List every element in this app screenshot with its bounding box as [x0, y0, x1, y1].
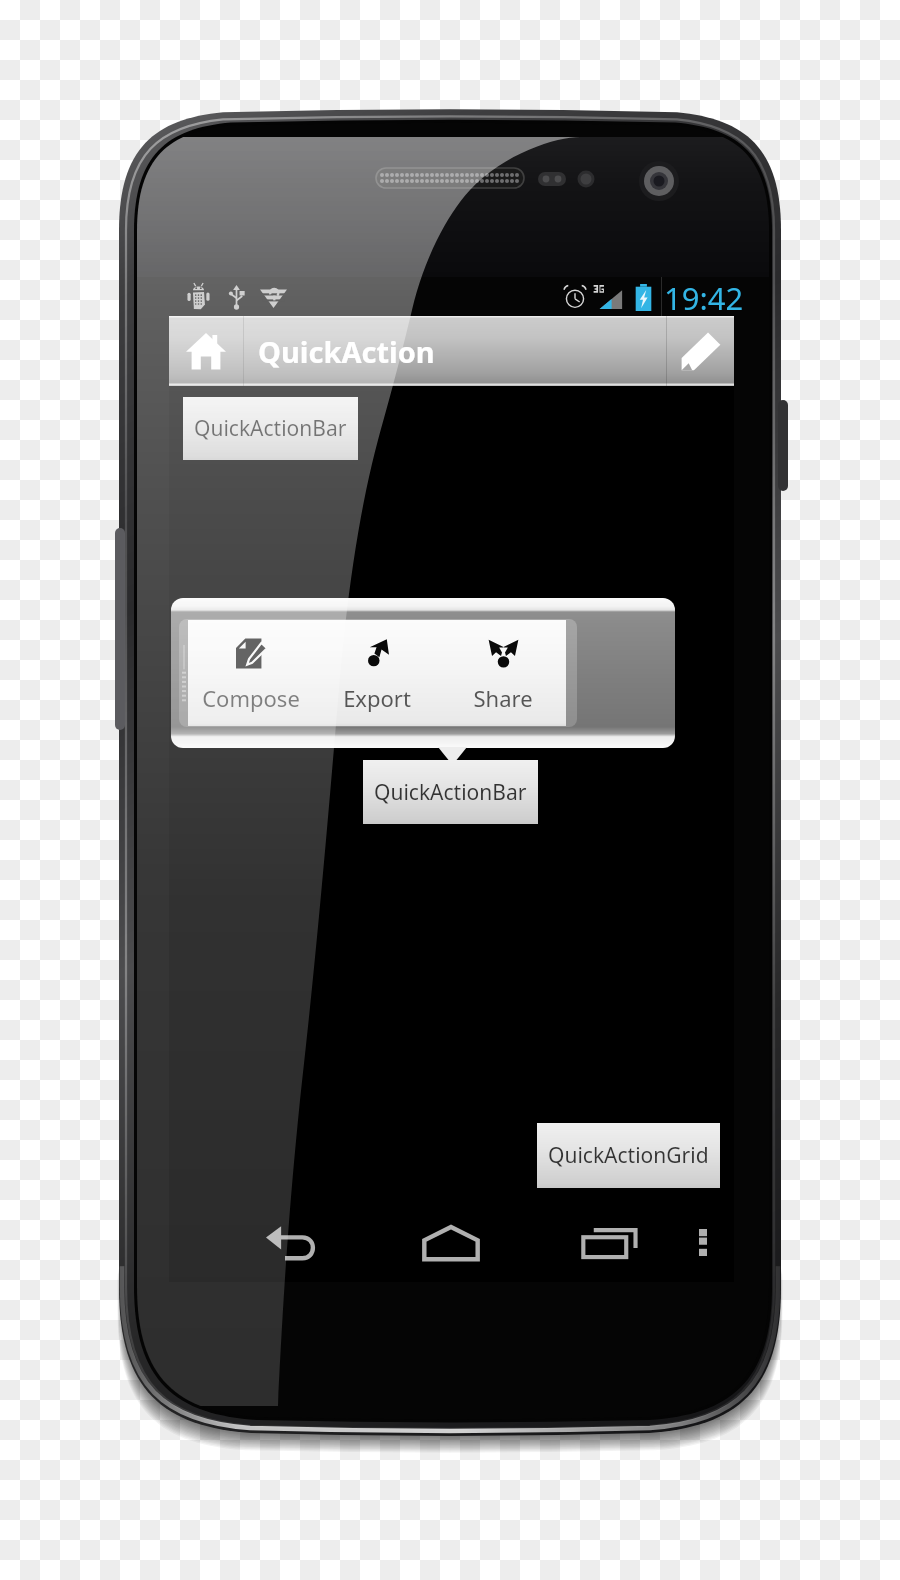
- button[interactable]: Share: [440, 620, 566, 726]
- button[interactable]: Home: [409, 1203, 493, 1282]
- button[interactable]: QuickActionBar: [363, 760, 538, 824]
- button[interactable]: Edit: [667, 316, 734, 386]
- staticText: QuickActionBar: [374, 778, 527, 807]
- button[interactable]: Recents: [568, 1203, 652, 1282]
- staticText: Export: [343, 683, 411, 713]
- staticText: Compose: [202, 683, 300, 713]
- button[interactable]: Export: [314, 620, 440, 726]
- button[interactable]: Home: [169, 316, 243, 386]
- staticText: QuickAction: [258, 332, 435, 371]
- staticText: Share: [473, 683, 533, 713]
- button[interactable]: QuickActionGrid: [537, 1123, 720, 1188]
- button[interactable]: More options: [673, 1203, 733, 1282]
- button[interactable]: QuickActionBar: [183, 397, 358, 460]
- button[interactable]: Back: [252, 1203, 336, 1282]
- staticText: QuickActionBar: [194, 414, 347, 443]
- staticText: QuickActionGrid: [548, 1141, 709, 1170]
- button[interactable]: Compose: [188, 620, 314, 726]
- button[interactable]: QuickAction: [244, 316, 666, 386]
- staticText: 19:42: [664, 277, 744, 316]
